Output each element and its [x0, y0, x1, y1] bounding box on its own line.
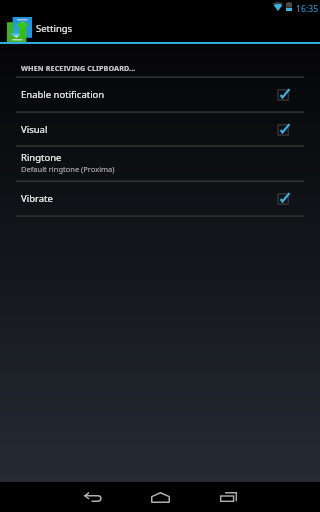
- button[interactable]: Recent apps: [194, 482, 262, 512]
- staticText: Visual: [21, 123, 48, 136]
- button[interactable]: Vibrate: [0, 181, 320, 216]
- staticText: Vibrate: [21, 192, 53, 205]
- staticText: WHEN RECEIVING CLIPBOARD...: [21, 63, 136, 73]
- staticText: 16:35: [296, 3, 319, 15]
- button[interactable]: Visual: [0, 112, 320, 147]
- button[interactable]: Home: [126, 482, 194, 512]
- staticText: Ringtone: [21, 151, 62, 164]
- staticText: Default ringtone (Proxima): [21, 164, 115, 174]
- staticText: Settings: [36, 22, 73, 35]
- button[interactable]: Ringtone: [0, 146, 320, 181]
- button[interactable]: Enable notification: [0, 77, 320, 112]
- staticText: Enable notification: [21, 88, 105, 101]
- button[interactable]: Back: [59, 482, 126, 512]
- button[interactable]: Settings: [0, 14, 320, 44]
